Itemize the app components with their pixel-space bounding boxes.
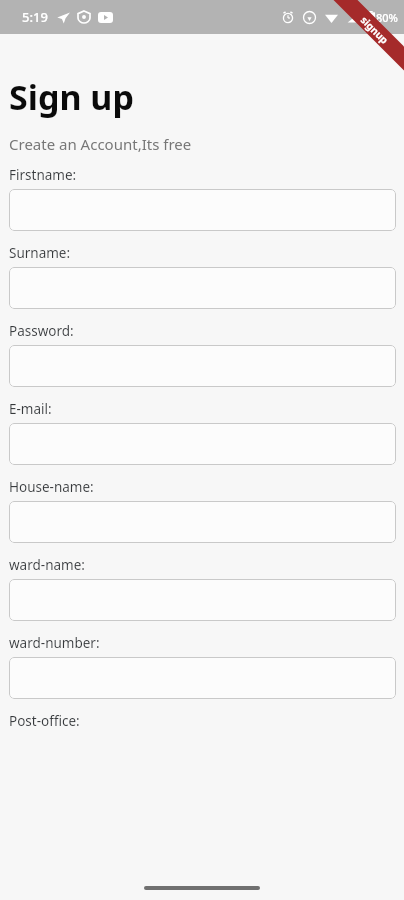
- button[interactable]: [9, 657, 396, 699]
- staticText: 5:19: [22, 8, 48, 26]
- staticText: E-mail:: [9, 400, 52, 418]
- staticText: ward-name:: [9, 556, 85, 574]
- button[interactable]: [9, 579, 396, 621]
- staticText: Password:: [9, 322, 74, 340]
- staticText: Post-office:: [9, 712, 80, 730]
- staticText: Create an Account,Its free: [9, 134, 192, 154]
- staticText: House-name:: [9, 478, 94, 496]
- button[interactable]: [9, 501, 396, 543]
- staticText: 80%: [376, 10, 398, 25]
- staticText: Firstname:: [9, 166, 77, 184]
- staticText: Surname:: [9, 244, 71, 262]
- button[interactable]: [9, 423, 396, 465]
- staticText: signup: [358, 13, 392, 47]
- staticText: ward-number:: [9, 634, 100, 652]
- button[interactable]: [9, 345, 396, 387]
- staticText: Sign up: [9, 74, 134, 120]
- button[interactable]: [9, 267, 396, 309]
- other: Home gesture bar: [144, 886, 260, 890]
- button[interactable]: [9, 189, 396, 231]
